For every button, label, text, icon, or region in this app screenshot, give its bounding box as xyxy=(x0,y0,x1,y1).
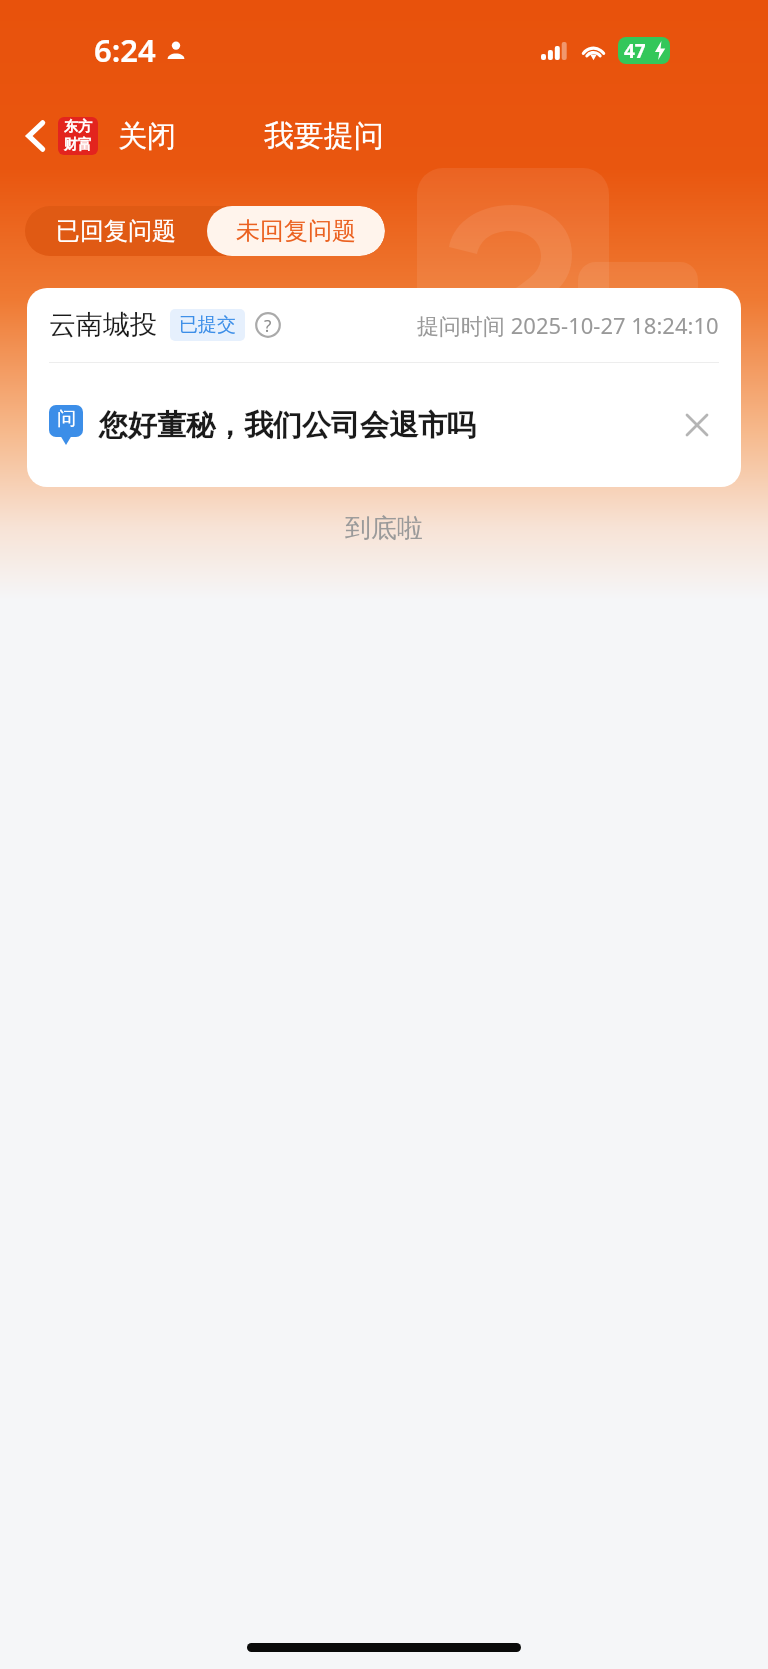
button[interactable]: 返回 xyxy=(12,113,58,159)
staticText: 您好董秘，我们公司会退市吗 xyxy=(99,407,476,444)
staticText: ? xyxy=(264,314,272,337)
staticText: 东方 xyxy=(64,118,92,136)
button[interactable]: 已回复问题 xyxy=(25,206,207,256)
staticText: 提问时间 2025-10-27 18:24:10 xyxy=(417,310,719,340)
staticText: 财富 xyxy=(64,136,92,154)
staticText: 未回复问题 xyxy=(236,216,356,246)
button[interactable]: 东方财富 xyxy=(58,117,98,155)
button[interactable]: 云南城投 xyxy=(27,288,741,487)
staticText: 我要提问 xyxy=(264,117,384,155)
button[interactable]: 删除 xyxy=(675,403,719,447)
button[interactable]: 关闭 xyxy=(114,112,180,161)
staticText: 47 xyxy=(624,38,646,64)
staticText: 关闭 xyxy=(118,118,176,155)
button[interactable]: 未回复问题 xyxy=(207,206,385,256)
button[interactable]: 说明 xyxy=(255,312,281,338)
staticText: 云南城投 xyxy=(49,308,157,342)
staticText: 问 xyxy=(57,407,76,431)
staticText: 6:24 xyxy=(94,29,156,71)
staticText: 已提交 xyxy=(179,313,236,337)
staticText: 已回复问题 xyxy=(56,216,176,246)
staticText: 到底啦 xyxy=(0,512,768,545)
